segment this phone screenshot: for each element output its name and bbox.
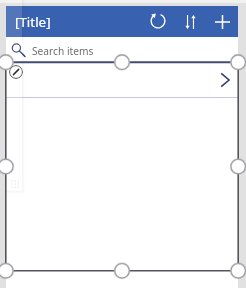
staticText: Search items (32, 44, 94, 58)
staticText: [Title] (15, 13, 51, 31)
button[interactable]: Edit (9, 65, 23, 79)
button[interactable]: Search items (6, 37, 238, 62)
button[interactable]: Refresh (146, 10, 170, 34)
button[interactable]: Sort (178, 10, 202, 34)
button[interactable]: Add (210, 10, 234, 34)
button[interactable] (6, 62, 238, 97)
